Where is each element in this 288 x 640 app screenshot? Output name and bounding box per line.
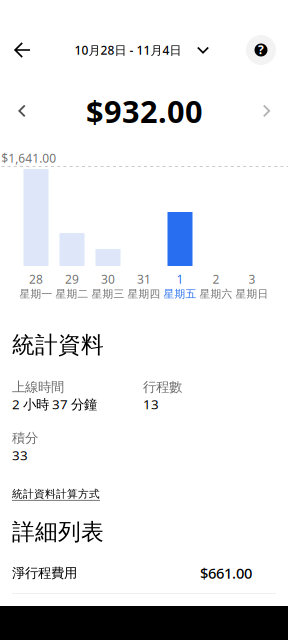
staticText: 淨行程費用 [12,565,77,581]
staticText: 28 [29,271,43,287]
staticText: 31 [137,271,151,287]
staticText: 星期日 [235,287,268,300]
staticText: 1 [176,271,183,287]
staticText: 行程數 [143,379,182,395]
staticText: 統計資料計算方式 [12,487,100,500]
staticText: 13 [143,395,159,413]
staticText: 星期六 [199,287,232,300]
staticText: $932.00 [86,91,203,131]
staticText: 33 [12,446,28,464]
staticText: 統計資料 [12,331,104,359]
staticText: 10月28日 - 11月4日 [74,42,181,58]
staticText: 星期三 [91,287,124,300]
staticText: 積分 [12,430,38,446]
staticText: 星期四 [127,287,160,300]
staticText: $1,641.00 [1,150,56,166]
staticText: 詳細列表 [12,518,104,546]
staticText: 2 小時 37 分鐘 [12,395,97,413]
staticText: 3 [248,271,255,287]
button[interactable]: Help [239,28,283,72]
button[interactable]: 10月28日 - 11月4日 [74,28,208,72]
staticText: ? [258,41,264,57]
staticText: 2 [212,271,219,287]
button[interactable]: Previous week [2,92,42,130]
staticText: 星期五 [163,287,196,300]
staticText: 29 [65,271,79,287]
staticText: 上線時間 [12,379,64,395]
button[interactable]: Next week [247,92,287,130]
staticText: $661.00 [200,563,252,583]
staticText: 星期二 [55,287,88,300]
button[interactable]: 淨行程費用 [12,553,276,594]
button[interactable]: 統計資料計算方式 [12,487,100,501]
staticText: 30 [101,271,115,287]
button[interactable]: Back [0,28,44,72]
staticText: 星期一 [19,287,52,300]
